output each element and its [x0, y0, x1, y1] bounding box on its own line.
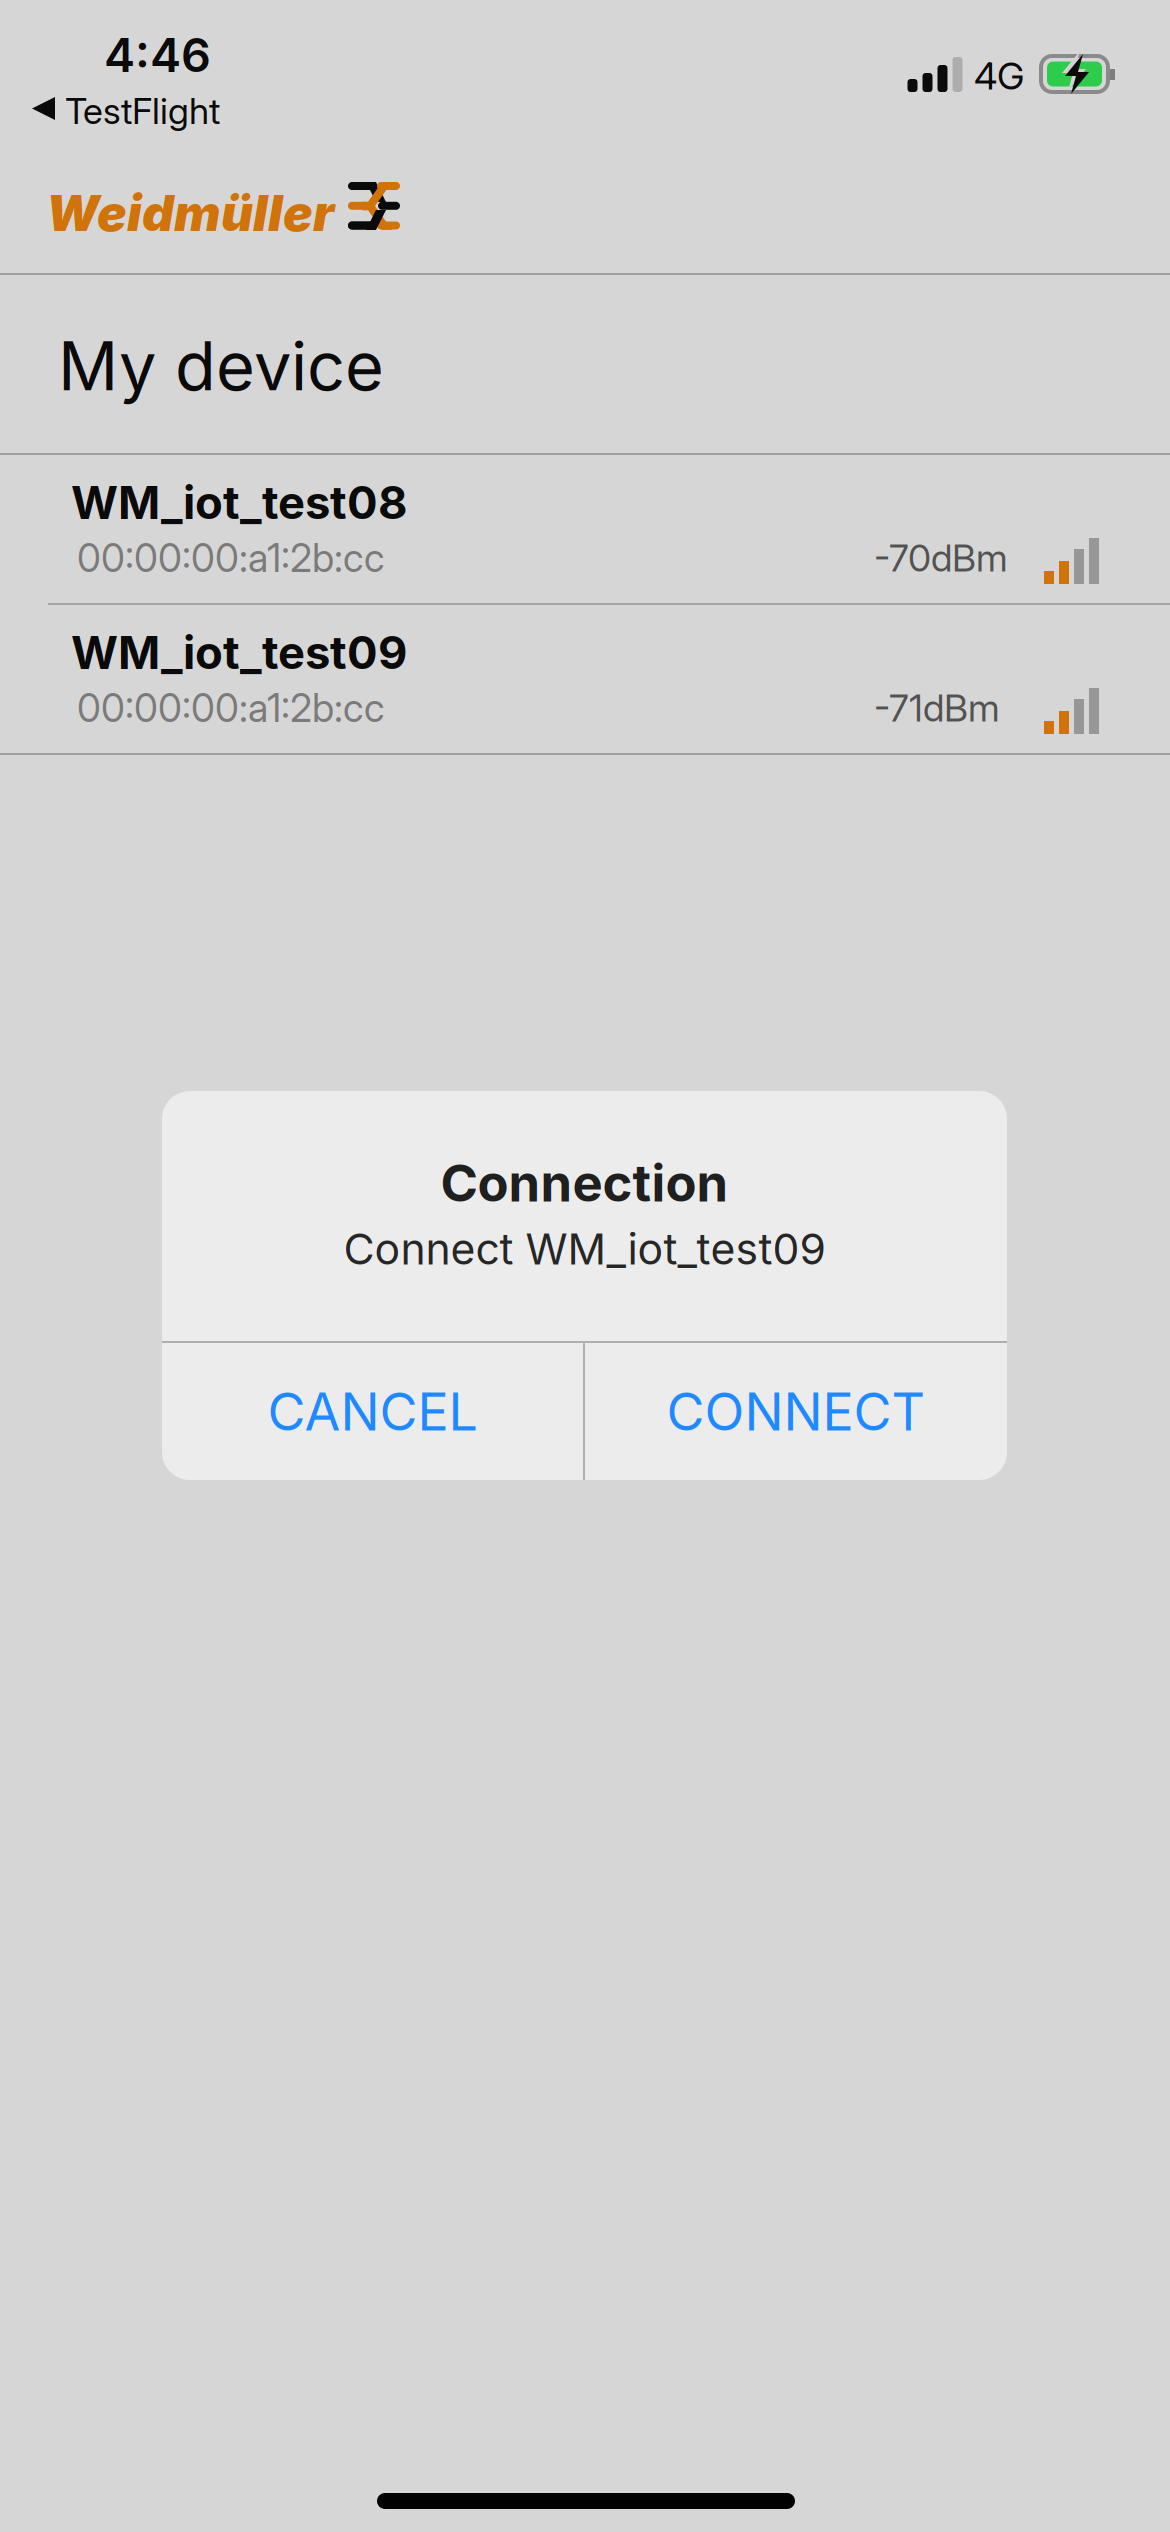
- staticText: My device: [58, 326, 384, 406]
- button[interactable]: WM_iot_test09: [0, 605, 1170, 753]
- staticText: 4G: [974, 53, 1024, 99]
- button[interactable]: WM_iot_test08: [0, 455, 1170, 603]
- staticText: Connect WM_iot_test09: [343, 1223, 825, 1275]
- button[interactable]: CANCEL: [162, 1343, 583, 1480]
- staticText: -70dBm: [874, 535, 1008, 581]
- staticText: -71dBm: [874, 685, 1000, 731]
- staticText: WM_iot_test09: [71, 625, 407, 680]
- staticText: Weidmüller: [46, 183, 334, 243]
- staticText: 4:46: [104, 27, 211, 83]
- button[interactable]: CONNECT: [585, 1343, 1007, 1480]
- staticText: 00:00:00:a1:2b:cc: [77, 685, 385, 731]
- staticText: TestFlight: [65, 89, 220, 133]
- staticText: 00:00:00:a1:2b:cc: [77, 535, 385, 581]
- staticText: CONNECT: [666, 1380, 925, 1443]
- staticText: Connection: [440, 1152, 728, 1214]
- staticText: WM_iot_test08: [71, 475, 408, 530]
- staticText: CANCEL: [267, 1380, 477, 1443]
